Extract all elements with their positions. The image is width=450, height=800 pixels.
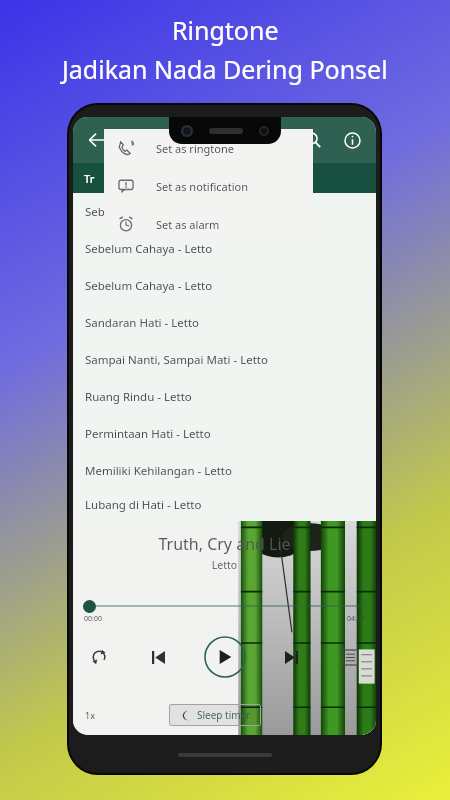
staticText: Jadikan Nada Dering Ponsel	[62, 52, 388, 86]
button[interactable]: Set as alarm	[104, 205, 313, 243]
staticText: Tr	[84, 171, 95, 186]
staticText: Letto	[73, 558, 376, 572]
button[interactable]: Lubang di Hati - Letto	[73, 489, 376, 521]
button[interactable]: Play	[203, 635, 247, 679]
staticText: Ringtone	[172, 13, 279, 47]
button[interactable]: Set as ringtone	[104, 129, 313, 167]
button[interactable]: Sebelum Cahaya - Letto	[73, 193, 376, 230]
button[interactable]: Previous	[143, 642, 173, 672]
staticText: Memiliki Kehilangan - Letto	[85, 463, 232, 479]
button[interactable]: Permintaan Hati - Letto	[73, 415, 376, 452]
staticText: Lubang di Hati - Letto	[85, 497, 202, 513]
button[interactable]: Back	[82, 125, 112, 155]
button[interactable]: Sebelum Cahaya - Letto	[73, 267, 376, 304]
staticText: Sandaran Hati - Letto	[85, 315, 200, 331]
staticText: Set as notification	[156, 179, 248, 194]
button[interactable]: Sampai Nanti, Sampai Mati - Letto	[73, 341, 376, 378]
staticText: 1x	[85, 709, 95, 721]
button[interactable]: Seek bar	[83, 598, 366, 614]
staticText: Sebelum Cahaya - Letto	[85, 278, 213, 294]
staticText: Set as alarm	[156, 217, 220, 232]
staticText: Sebelum Cahaya - Letto	[85, 204, 213, 220]
button[interactable]: 1x	[85, 709, 95, 721]
button[interactable]: Sandaran Hati - Letto	[73, 304, 376, 341]
button[interactable]: Info	[337, 125, 367, 155]
button[interactable]: Playlist	[335, 642, 365, 672]
button[interactable]: Sebelum Cahaya - Letto	[73, 230, 376, 267]
button[interactable]: Memiliki Kehilangan - Letto	[73, 452, 376, 489]
staticText: Sleep timer	[197, 708, 251, 722]
staticText: Permintaan Hati - Letto	[85, 426, 211, 442]
staticText: Ruang Rindu - Letto	[85, 389, 192, 405]
button[interactable]: Sleep timer	[169, 704, 261, 726]
staticText: 00:00	[84, 614, 102, 624]
button[interactable]: Next	[276, 642, 306, 672]
button[interactable]: Ruang Rindu - Letto	[73, 378, 376, 415]
staticText: Set as ringtone	[156, 141, 234, 156]
button[interactable]: Search	[298, 125, 328, 155]
staticText: 04:04	[347, 614, 365, 624]
button[interactable]: Set as notification	[104, 167, 313, 205]
button[interactable]: Repeat	[84, 642, 114, 672]
staticText: Sampai Nanti, Sampai Mati - Letto	[85, 352, 268, 368]
staticText: Sebelum Cahaya - Letto	[85, 241, 213, 257]
staticText: Truth, Cry and Lie	[73, 533, 376, 555]
